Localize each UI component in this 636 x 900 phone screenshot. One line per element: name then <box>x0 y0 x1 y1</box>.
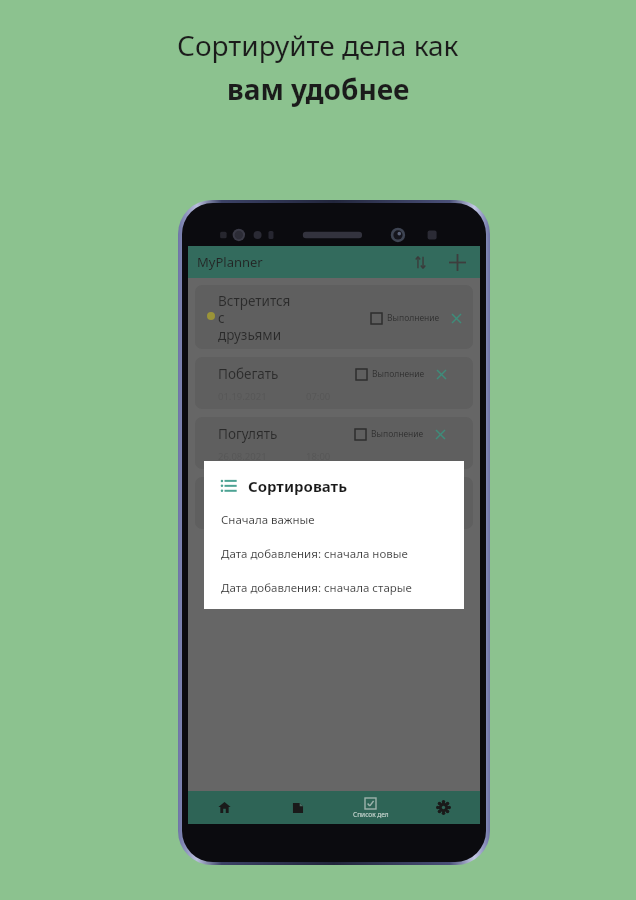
staticText: Дата добавления: сначала старые <box>221 580 412 596</box>
staticText: Почитать <box>218 485 280 503</box>
staticText: Сортировать <box>248 476 348 496</box>
button[interactable]: Главная <box>188 791 261 824</box>
staticText: Список дел <box>353 810 389 819</box>
staticText: 25.08.2021 <box>218 510 267 523</box>
staticText: Погулять <box>218 425 278 443</box>
staticText: Выполнение <box>372 368 425 380</box>
staticText: MyPlanner <box>197 253 263 271</box>
staticText: 18:00 <box>306 450 331 463</box>
button[interactable]: Настройки <box>407 791 480 824</box>
staticText: Сначала важные <box>221 512 315 528</box>
staticText: Дата добавления: сначала новые <box>221 546 408 562</box>
button[interactable]: Список дел <box>334 791 407 824</box>
button[interactable] <box>371 313 382 324</box>
button[interactable]: Удалить <box>434 367 448 381</box>
button[interactable]: Погулять <box>195 417 473 469</box>
staticText: Встретится с друзьями <box>218 292 294 344</box>
button[interactable]: Удалить <box>433 427 447 441</box>
button[interactable]: Сначала важные <box>221 512 450 528</box>
staticText: Выполнение <box>387 312 440 324</box>
button[interactable]: Заметки <box>261 791 334 824</box>
button[interactable] <box>355 429 366 440</box>
button[interactable]: Почитать <box>195 477 473 529</box>
button[interactable]: Встретится с друзьями <box>195 285 473 349</box>
button[interactable]: Побегать <box>195 357 473 409</box>
button[interactable]: Добавить <box>443 248 471 276</box>
button[interactable]: Дата добавления: сначала старые <box>221 580 450 596</box>
button[interactable]: Сортировать <box>407 249 433 275</box>
staticText: вам удобнее <box>227 70 410 108</box>
button[interactable]: Удалить <box>449 311 463 325</box>
staticText: 26.08.2021 <box>218 450 267 463</box>
staticText: Сортируйте дела как <box>177 26 459 64</box>
staticText: 00:00 <box>306 510 331 523</box>
button[interactable] <box>356 369 367 380</box>
staticText: Выполнение <box>371 428 424 440</box>
button[interactable]: Дата добавления: сначала новые <box>221 546 450 562</box>
staticText: Побегать <box>218 365 279 383</box>
